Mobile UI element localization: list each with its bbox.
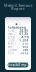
staticText: Performance — [8, 26, 27, 29]
staticText: +512 — [20, 51, 28, 55]
staticText: View full report — [8, 63, 28, 67]
staticText: Engagement — [8, 35, 18, 39]
staticText: Comments — [8, 48, 19, 52]
staticText: Saves — [8, 45, 14, 48]
staticText: Make it famous — [3, 2, 32, 8]
button[interactable]: View full report — [8, 62, 28, 67]
staticText: 318 — [22, 42, 28, 45]
staticText: 61.2k — [19, 32, 28, 36]
staticText: 24.8k — [19, 29, 28, 32]
staticText: 4.9% — [21, 35, 28, 39]
staticText: Shares — [8, 42, 16, 45]
staticText: Report — [11, 6, 25, 11]
staticText: 1,204 — [19, 39, 28, 42]
staticText: Followers — [8, 51, 17, 55]
staticText: Reach — [8, 29, 16, 32]
staticText: Clicks — [8, 39, 15, 42]
staticText: 902 — [22, 45, 28, 48]
staticText: Impressions — [8, 32, 16, 36]
staticText: mkit — [18, 23, 20, 25]
staticText: 146 — [22, 48, 28, 52]
